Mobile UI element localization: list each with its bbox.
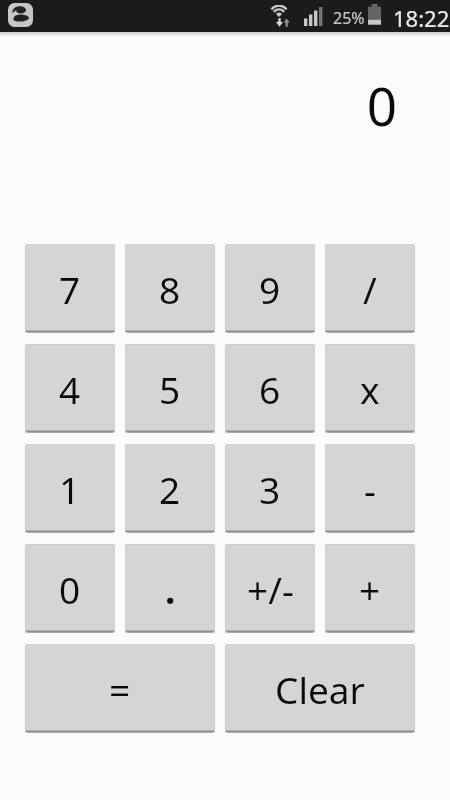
staticText: 6 — [259, 364, 281, 414]
staticText: + — [359, 564, 381, 614]
staticText: Clear — [275, 664, 365, 714]
staticText: 8 — [159, 264, 181, 314]
staticText: 4 — [59, 364, 81, 414]
button[interactable]: 5 — [125, 344, 215, 433]
staticText: +/- — [247, 564, 294, 614]
staticText: 25% — [333, 7, 365, 29]
staticText: - — [364, 464, 376, 514]
button[interactable]: 1 — [25, 444, 115, 533]
button[interactable]: 6 — [225, 344, 315, 433]
button[interactable]: + — [325, 544, 415, 633]
button[interactable]: 3 — [225, 444, 315, 533]
button[interactable]: +/- — [225, 544, 315, 633]
staticText: 0 — [366, 69, 397, 141]
button[interactable]: 2 — [125, 444, 215, 533]
staticText: 9 — [259, 264, 281, 314]
staticText: 5 — [159, 364, 181, 414]
button[interactable]: 8 — [125, 244, 215, 333]
button[interactable]: 4 — [25, 344, 115, 433]
button[interactable]: / — [325, 244, 415, 333]
staticText: 2 — [159, 464, 181, 514]
staticText: / — [363, 264, 377, 314]
staticText: 7 — [59, 264, 81, 314]
staticText: 0 — [59, 564, 81, 614]
staticText: . — [165, 564, 176, 614]
staticText: x — [360, 364, 380, 414]
button[interactable]: . — [125, 544, 215, 633]
button[interactable]: 7 — [25, 244, 115, 333]
button[interactable]: Clear — [225, 644, 415, 733]
staticText: 3 — [259, 464, 281, 514]
staticText: 1 — [59, 464, 81, 514]
button[interactable]: = — [25, 644, 215, 733]
button[interactable]: 9 — [225, 244, 315, 333]
staticText: = — [109, 664, 131, 714]
button[interactable]: 0 — [25, 544, 115, 633]
button[interactable]: - — [325, 444, 415, 533]
button[interactable]: x — [325, 344, 415, 433]
staticText: 18:22 — [393, 3, 450, 33]
